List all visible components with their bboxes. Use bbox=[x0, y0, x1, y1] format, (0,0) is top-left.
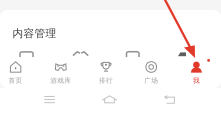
button[interactable]: 我 bbox=[174, 61, 219, 84]
staticText: 我 bbox=[193, 76, 200, 85]
button[interactable]: Recent apps bbox=[19, 94, 79, 105]
staticText: 内容管理 bbox=[12, 27, 56, 40]
button[interactable]: 广场 bbox=[129, 61, 174, 84]
button[interactable]: Back bbox=[139, 94, 199, 105]
staticText: 广场 bbox=[144, 76, 158, 85]
staticText: 游戏库 bbox=[50, 76, 71, 85]
staticText: 排行 bbox=[99, 76, 113, 85]
button[interactable]: 首页 bbox=[0, 61, 38, 84]
staticText: 首页 bbox=[9, 76, 23, 85]
button[interactable]: Home bbox=[79, 94, 139, 105]
button[interactable]: 游戏库 bbox=[38, 61, 83, 84]
button[interactable]: 排行 bbox=[83, 61, 129, 84]
